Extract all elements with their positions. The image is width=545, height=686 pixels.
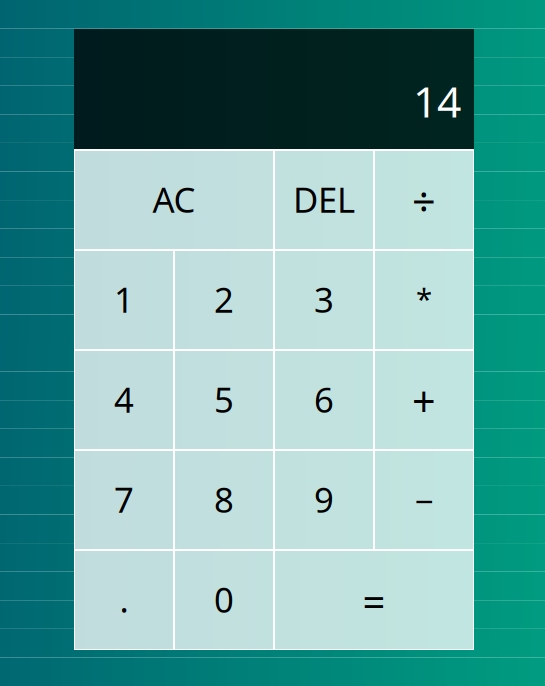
- button[interactable]: DEL: [275, 151, 373, 249]
- button[interactable]: 5: [175, 351, 273, 449]
- button[interactable]: 7: [75, 451, 173, 549]
- button[interactable]: AC: [75, 151, 273, 249]
- staticText: ÷: [412, 172, 436, 229]
- button[interactable]: 9: [275, 451, 373, 549]
- staticText: 8: [214, 476, 234, 523]
- staticText: 1: [114, 276, 134, 323]
- staticText: *: [416, 278, 432, 318]
- staticText: 0: [214, 576, 234, 623]
- staticText: 5: [214, 376, 234, 423]
- button[interactable]: 6: [275, 351, 373, 449]
- staticText: AC: [152, 176, 195, 223]
- staticText: 3: [314, 276, 334, 323]
- staticText: +: [412, 373, 436, 429]
- button[interactable]: 8: [175, 451, 273, 549]
- button[interactable]: 3: [275, 251, 373, 349]
- staticText: =: [362, 574, 385, 629]
- button[interactable]: =: [275, 551, 473, 649]
- staticText: 2: [214, 276, 234, 323]
- staticText: 7: [114, 476, 134, 523]
- staticText: .: [119, 576, 128, 623]
- staticText: 9: [314, 476, 334, 523]
- staticText: 6: [314, 376, 334, 423]
- staticText: 14: [413, 72, 461, 130]
- staticText: −: [414, 478, 433, 523]
- button[interactable]: +: [375, 351, 473, 449]
- button[interactable]: .: [75, 551, 173, 649]
- staticText: 4: [114, 376, 134, 423]
- button[interactable]: −: [375, 451, 473, 549]
- staticText: DEL: [293, 176, 355, 223]
- button[interactable]: *: [375, 251, 473, 349]
- button[interactable]: 0: [175, 551, 273, 649]
- button[interactable]: 4: [75, 351, 173, 449]
- button[interactable]: ÷: [375, 151, 473, 249]
- button[interactable]: 1: [75, 251, 173, 349]
- button[interactable]: 2: [175, 251, 273, 349]
